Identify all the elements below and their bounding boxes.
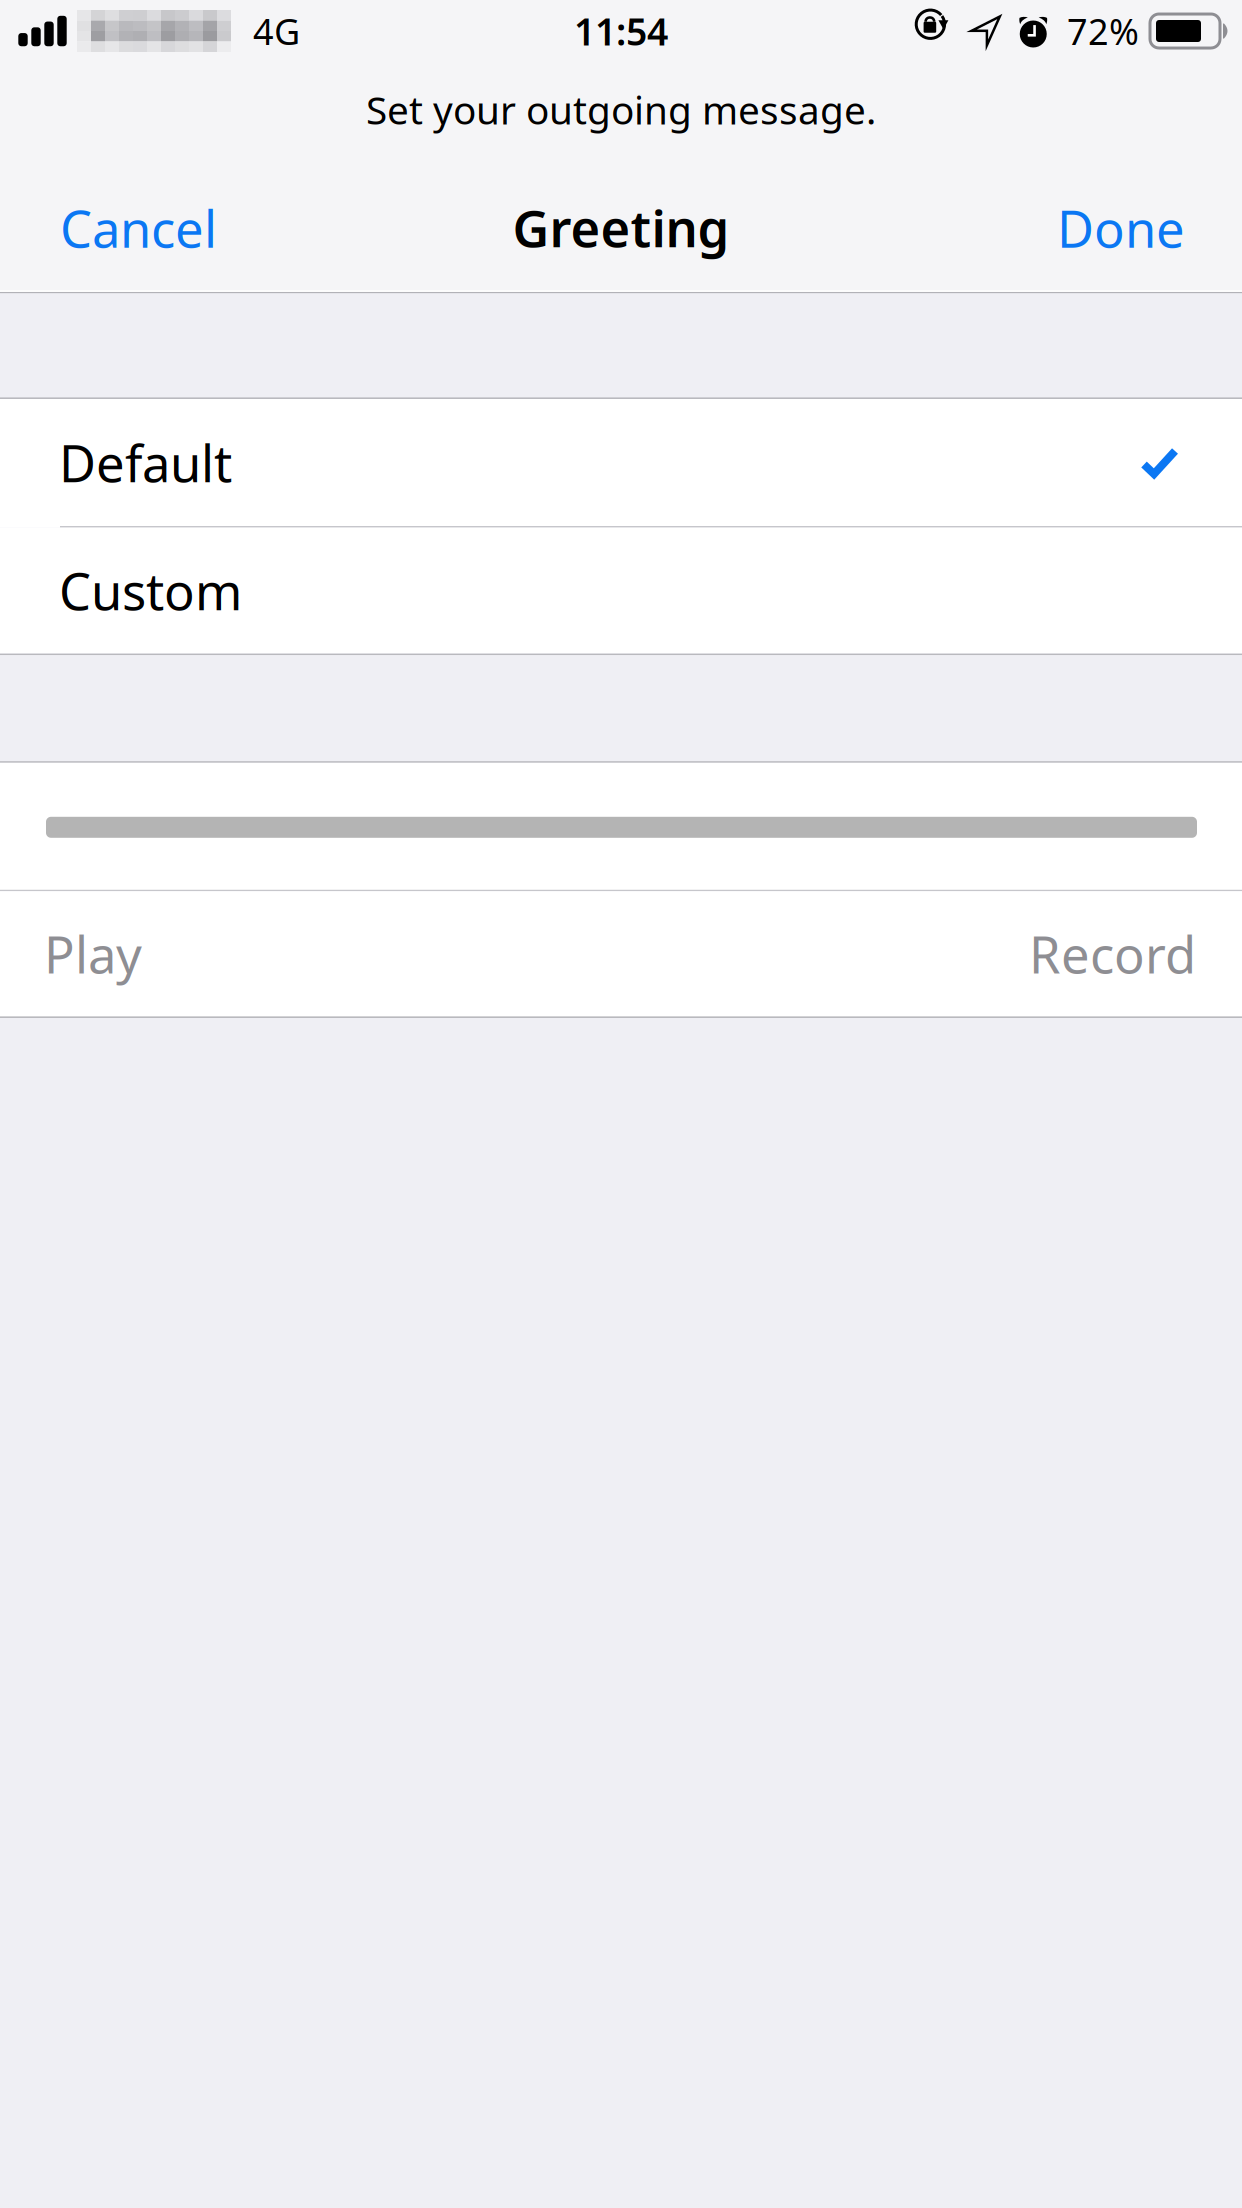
staticText: Record [1029,920,1196,988]
staticText: 11:54 [574,6,668,56]
staticText: Greeting [512,194,729,261]
staticText: Set your outgoing message. [366,84,876,135]
staticText: Play [44,920,142,988]
button[interactable]: Record [621,891,1242,1016]
button[interactable]: Done [1012,162,1227,288]
staticText: Default [59,429,232,496]
staticText: 4G [253,7,300,55]
staticText: Custom [59,557,242,624]
button[interactable]: Cancel [15,162,262,288]
staticText: Done [1057,194,1185,262]
button[interactable]: Custom [0,528,1242,654]
button[interactable]: Default [0,399,1242,526]
button[interactable]: Play [0,891,621,1016]
staticText: Cancel [60,194,217,262]
staticText: 72% [1067,7,1139,55]
